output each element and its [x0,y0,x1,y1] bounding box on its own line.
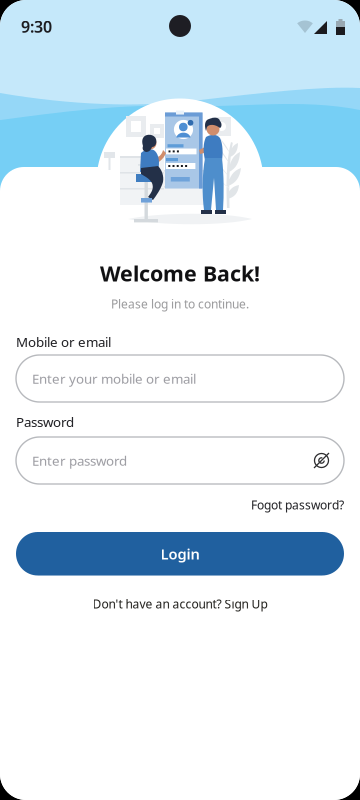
button[interactable]: Enter password [16,437,344,484]
staticText: Please log in to continue. [111,296,249,312]
staticText: Enter your mobile or email [32,370,196,387]
staticText: Fogot password? [251,497,344,513]
staticText: Don't have an account? Sign Up [92,596,267,612]
button[interactable]: Login [16,532,344,575]
staticText: Mobile or email [16,333,111,351]
button[interactable]: Show password [313,452,330,468]
staticText: Password [16,413,74,431]
button[interactable]: Fogot password? [251,497,344,513]
button[interactable]: Don't have an account? Sign Up [92,596,267,612]
staticText: Login [160,544,199,563]
staticText: 9:30 [21,16,52,37]
staticText: Welcome Back! [100,259,260,287]
button[interactable]: Enter your mobile or email [16,355,344,402]
staticText: Enter password [32,452,127,469]
